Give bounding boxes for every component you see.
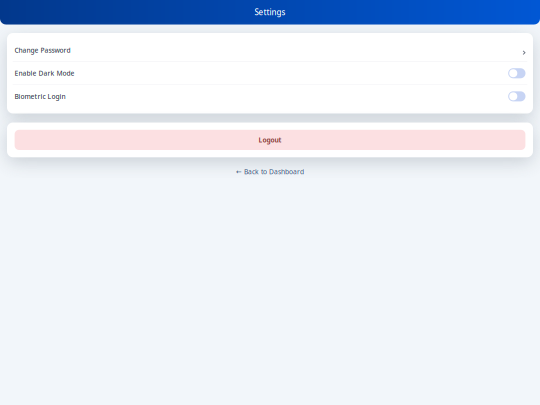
- button[interactable]: Enable Dark Mode: [7, 62, 533, 84]
- button[interactable]: Biometric Login: [7, 85, 533, 107]
- staticText: Biometric Login: [14, 92, 65, 101]
- staticText: ←: [236, 168, 242, 175]
- button[interactable]: Logout: [15, 130, 525, 150]
- staticText: Enable Dark Mode: [14, 69, 74, 78]
- staticText: Logout: [258, 135, 281, 144]
- staticText: Settings: [254, 7, 285, 17]
- staticText: Change Password: [14, 46, 70, 55]
- button[interactable]: Change Password: [7, 39, 533, 61]
- staticText: Back to Dashboard: [244, 167, 304, 176]
- button[interactable]: ←: [233, 165, 307, 178]
